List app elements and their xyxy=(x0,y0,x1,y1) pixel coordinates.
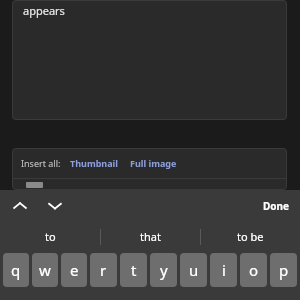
staticText: t xyxy=(131,260,137,280)
staticText: r xyxy=(100,260,107,280)
staticText: Insert all: xyxy=(21,157,61,169)
button[interactable]: y xyxy=(150,253,177,287)
button[interactable]: Thumbnail xyxy=(70,157,118,169)
button[interactable]: Next field xyxy=(44,195,66,217)
button[interactable]: w xyxy=(32,253,58,287)
button[interactable]: q xyxy=(3,253,29,287)
button[interactable]: e xyxy=(61,253,87,287)
staticText: to be xyxy=(237,229,264,244)
button[interactable]: Done xyxy=(263,199,290,213)
button[interactable]: o xyxy=(240,253,267,287)
staticText: Done xyxy=(263,199,290,213)
staticText: p xyxy=(279,260,289,280)
button[interactable]: t xyxy=(120,253,147,287)
button[interactable]: u xyxy=(180,253,207,287)
staticText: to xyxy=(45,229,56,244)
staticText: that xyxy=(140,229,161,244)
button[interactable]: p xyxy=(270,253,297,287)
button[interactable]: Previous field xyxy=(9,195,31,217)
staticText: w xyxy=(39,260,51,280)
button[interactable] xyxy=(26,182,287,190)
button[interactable]: to xyxy=(0,221,100,252)
button[interactable]: r xyxy=(90,253,117,287)
staticText: i xyxy=(222,260,226,280)
button[interactable]: that xyxy=(101,221,200,252)
button[interactable]: appears xyxy=(12,0,287,120)
staticText: y xyxy=(160,260,168,280)
staticText: u xyxy=(189,260,199,280)
button[interactable]: to be xyxy=(201,221,300,252)
staticText: q xyxy=(11,260,21,280)
staticText: appears xyxy=(23,3,65,18)
staticText: Full image xyxy=(130,157,177,169)
staticText: o xyxy=(249,260,259,280)
button[interactable]: Full image xyxy=(130,157,177,169)
button[interactable]: i xyxy=(210,253,237,287)
staticText: e xyxy=(70,260,79,280)
staticText: Thumbnail xyxy=(70,157,118,169)
